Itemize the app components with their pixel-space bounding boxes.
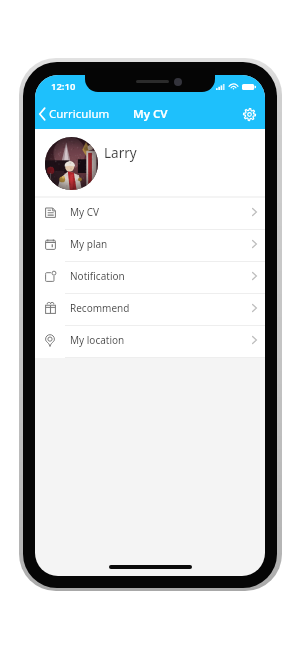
staticText: Curriculum: [49, 106, 110, 122]
staticText: My plan: [70, 237, 108, 251]
staticText: Notification: [70, 269, 125, 283]
staticText: Recommend: [70, 301, 130, 315]
button[interactable]: Settings: [243, 108, 265, 121]
button[interactable]: My location: [35, 326, 265, 358]
staticText: My location: [70, 333, 125, 347]
staticText: My CV: [133, 106, 168, 122]
staticText: 12:10: [51, 80, 76, 93]
button[interactable]: Curriculum: [35, 106, 118, 122]
staticText: My CV: [70, 205, 100, 219]
button[interactable]: Recommend: [35, 294, 265, 326]
button[interactable]: Notification: [35, 262, 265, 294]
button[interactable]: My plan: [35, 230, 265, 262]
staticText: Larry: [104, 144, 137, 162]
button[interactable]: My CV: [35, 198, 265, 230]
